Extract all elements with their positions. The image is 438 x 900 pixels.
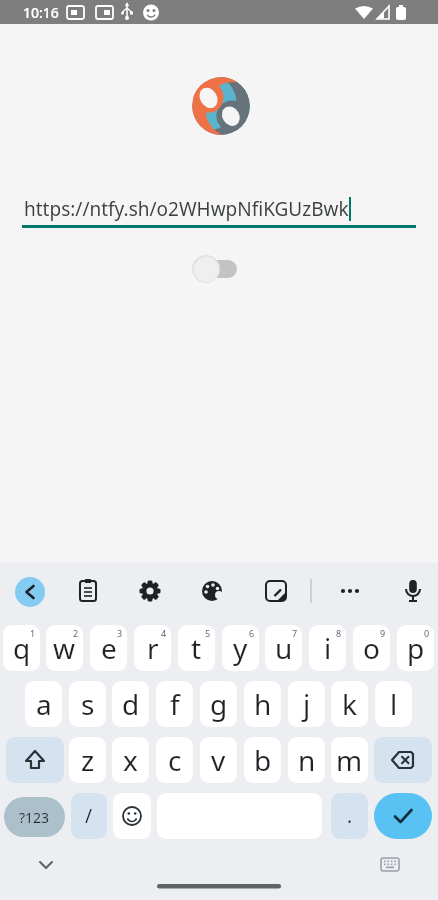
staticText: w — [53, 629, 76, 667]
button[interactable]: j — [288, 681, 325, 727]
staticText: y — [233, 629, 248, 667]
staticText: q — [13, 629, 31, 667]
button[interactable]: i — [309, 625, 346, 671]
staticText: i — [324, 629, 332, 667]
button[interactable]: y — [222, 625, 259, 671]
button[interactable] — [374, 793, 432, 839]
staticText: e — [101, 629, 117, 667]
button[interactable] — [370, 845, 410, 885]
button[interactable] — [330, 571, 370, 611]
button[interactable]: t — [178, 625, 215, 671]
button[interactable] — [256, 571, 296, 611]
button[interactable]: d — [112, 681, 149, 727]
button[interactable]: / — [71, 793, 107, 839]
button[interactable]: f — [156, 681, 193, 727]
staticText: 7 — [292, 627, 298, 639]
button[interactable] — [113, 793, 151, 839]
button[interactable]: z — [69, 737, 106, 783]
button[interactable] — [196, 260, 237, 278]
button[interactable]: p — [397, 625, 434, 671]
staticText: 8 — [336, 627, 342, 639]
button[interactable]: r — [134, 625, 171, 671]
button[interactable]: e — [90, 625, 127, 671]
staticText: d — [122, 685, 140, 723]
staticText: x — [123, 741, 138, 779]
staticText: g — [210, 685, 228, 723]
staticText: f — [170, 685, 180, 723]
button[interactable]: o — [353, 625, 390, 671]
button[interactable]: q — [3, 625, 40, 671]
staticText: m — [336, 741, 363, 779]
button[interactable]: x — [112, 737, 149, 783]
staticText: . — [347, 803, 353, 829]
button[interactable]: k — [331, 681, 368, 727]
staticText: h — [254, 685, 272, 723]
button[interactable] — [68, 571, 108, 611]
button[interactable]: . — [331, 793, 368, 839]
staticText: 2 — [73, 627, 79, 639]
button[interactable]: w — [46, 625, 83, 671]
staticText: 9 — [380, 627, 386, 639]
staticText: r — [147, 629, 159, 667]
button[interactable]: a — [25, 681, 62, 727]
staticText: 0 — [424, 627, 430, 639]
staticText: b — [254, 741, 272, 779]
staticText: c — [168, 741, 182, 779]
button[interactable] — [6, 737, 64, 783]
staticText: s — [81, 685, 95, 723]
button[interactable] — [393, 571, 433, 611]
staticText: 6 — [249, 627, 255, 639]
button[interactable]: n — [288, 737, 325, 783]
staticText: https://ntfy.sh/o2WHwpNfiKGUzBwk — [24, 196, 349, 222]
button[interactable]: m — [331, 737, 368, 783]
staticText: v — [211, 741, 226, 779]
staticText: n — [298, 741, 316, 779]
staticText: / — [85, 803, 93, 829]
button[interactable] — [192, 571, 232, 611]
button[interactable]: u — [265, 625, 302, 671]
button[interactable] — [15, 577, 45, 607]
staticText: p — [407, 629, 425, 667]
staticText: 10:16 — [23, 3, 59, 22]
staticText: u — [275, 629, 293, 667]
button[interactable]: b — [244, 737, 281, 783]
staticText: z — [81, 741, 95, 779]
button[interactable] — [374, 737, 432, 783]
button[interactable]: g — [200, 681, 237, 727]
button[interactable]: ?123 — [4, 797, 65, 837]
staticText: k — [342, 685, 357, 723]
button[interactable]: h — [244, 681, 281, 727]
button[interactable] — [22, 190, 416, 230]
staticText: t — [191, 629, 202, 667]
staticText: a — [36, 685, 52, 723]
staticText: o — [363, 629, 380, 667]
staticText: j — [303, 685, 311, 723]
button[interactable]: l — [375, 681, 412, 727]
button[interactable] — [26, 845, 66, 885]
button[interactable]: c — [156, 737, 193, 783]
button[interactable]: v — [200, 737, 237, 783]
staticText: ?123 — [19, 808, 50, 827]
button[interactable] — [130, 571, 170, 611]
staticText: 4 — [161, 627, 167, 639]
button[interactable]: s — [69, 681, 106, 727]
staticText: 5 — [205, 627, 211, 639]
staticText: 1 — [30, 627, 36, 639]
staticText: 3 — [117, 627, 123, 639]
staticText: l — [390, 685, 398, 723]
